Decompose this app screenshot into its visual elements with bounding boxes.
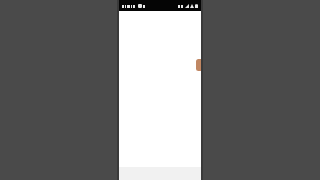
button[interactable]: Status bar (119, 0, 201, 11)
other: Scroll indicator (196, 59, 201, 71)
